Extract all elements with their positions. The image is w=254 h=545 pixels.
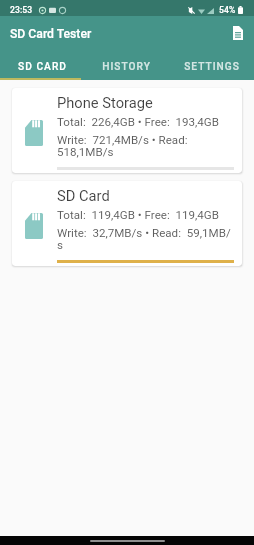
button[interactable]: SETTINGS [169,50,254,80]
staticText: Total: 226,4GB • Free: 193,4GB [57,115,219,129]
staticText: SETTINGS [184,61,240,73]
staticText: Phone Storage [57,94,153,111]
button[interactable]: Phone Storage [12,88,242,173]
button[interactable]: Open report [227,22,249,44]
button[interactable]: SD Card [12,181,242,266]
staticText: SD CARD [18,61,67,73]
staticText: SD Card Tester [10,27,92,41]
staticText: 54% [219,5,236,15]
staticText: SD Card [57,187,110,204]
staticText: Total: 119,4GB • Free: 119,4GB [57,208,219,222]
button[interactable]: SD CARD [0,50,84,80]
staticText: HISTORY [102,61,151,73]
staticText: Write: 32,7MB/s • Read: 59,1MB/s [57,226,234,252]
staticText: Write: 721,4MB/s • Read: 518,1MB/s [57,133,234,159]
button[interactable]: HISTORY [84,50,169,80]
staticText: 23:53 [10,5,33,15]
